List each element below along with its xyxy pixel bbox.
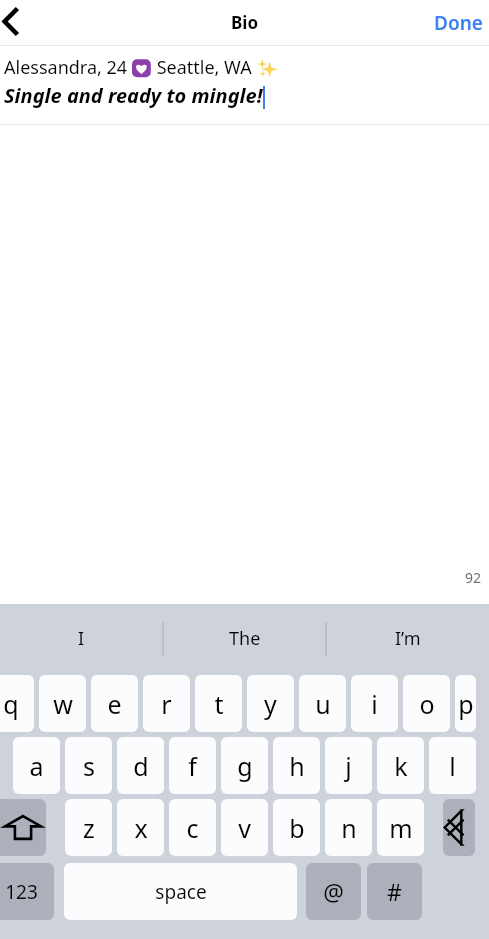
staticText: I’m xyxy=(395,626,421,651)
button[interactable]: Back xyxy=(0,0,34,45)
button[interactable]: # xyxy=(367,863,422,920)
staticText: w xyxy=(53,687,73,721)
button[interactable]: x xyxy=(117,799,164,856)
button[interactable]: u xyxy=(299,675,346,732)
button[interactable]: k xyxy=(377,737,424,794)
staticText: t xyxy=(214,687,224,721)
staticText: v xyxy=(238,811,251,845)
button[interactable]: o xyxy=(403,675,450,732)
staticText: Seattle, WA xyxy=(152,55,257,80)
button[interactable]: I xyxy=(0,604,163,672)
staticText: Done xyxy=(434,10,483,36)
staticText: r xyxy=(161,687,172,721)
staticText: z xyxy=(83,811,95,845)
button[interactable]: b xyxy=(273,799,320,856)
staticText: c xyxy=(186,811,199,845)
button[interactable]: q xyxy=(0,675,34,732)
button[interactable]: Backspace xyxy=(443,799,475,856)
staticText: p xyxy=(458,687,474,721)
staticText: y xyxy=(264,687,277,721)
button[interactable]: v xyxy=(221,799,268,856)
button[interactable]: Alessandra, 24 xyxy=(0,46,489,124)
staticText: # xyxy=(387,876,402,907)
staticText: o xyxy=(419,687,435,721)
button[interactable]: l xyxy=(429,737,476,794)
button[interactable]: w xyxy=(39,675,86,732)
staticText: e xyxy=(107,687,122,721)
staticText: k xyxy=(394,749,408,783)
staticText: The xyxy=(229,626,261,651)
button[interactable]: m xyxy=(377,799,424,856)
button[interactable]: @ xyxy=(306,863,361,920)
staticText: d xyxy=(133,749,149,783)
staticText: space xyxy=(155,879,207,905)
button[interactable]: h xyxy=(273,737,320,794)
staticText: s xyxy=(83,749,95,783)
staticText: b xyxy=(289,811,305,845)
button[interactable]: g xyxy=(221,737,268,794)
button[interactable]: r xyxy=(143,675,190,732)
staticText: u xyxy=(315,687,331,721)
staticText: x xyxy=(134,811,148,845)
button[interactable]: i xyxy=(351,675,398,732)
staticText: m xyxy=(389,811,413,845)
button[interactable]: n xyxy=(325,799,372,856)
staticText: 123 xyxy=(5,879,38,905)
staticText: j xyxy=(345,749,352,783)
staticText: Bio xyxy=(231,11,259,34)
staticText: 92 xyxy=(465,568,482,587)
button[interactable]: f xyxy=(169,737,216,794)
button[interactable]: s xyxy=(65,737,112,794)
button[interactable]: space xyxy=(64,863,297,920)
staticText: h xyxy=(289,749,305,783)
staticText: Alessandra, 24 xyxy=(4,55,132,80)
button[interactable]: c xyxy=(169,799,216,856)
staticText: I xyxy=(78,626,85,651)
button[interactable]: 123 xyxy=(0,863,54,920)
button[interactable]: a xyxy=(13,737,60,794)
button[interactable]: e xyxy=(91,675,138,732)
button[interactable]: t xyxy=(195,675,242,732)
button[interactable]: z xyxy=(65,799,112,856)
staticText: Single and ready to mingle! xyxy=(4,82,263,109)
staticText: i xyxy=(371,687,378,721)
button[interactable]: d xyxy=(117,737,164,794)
staticText: @ xyxy=(323,876,344,907)
staticText: l xyxy=(449,749,456,783)
button[interactable]: p xyxy=(455,675,476,732)
button[interactable]: Done xyxy=(428,0,489,45)
staticText: g xyxy=(237,749,253,783)
button[interactable]: I’m xyxy=(326,604,489,672)
button[interactable]: Shift xyxy=(0,799,46,856)
button[interactable]: The xyxy=(163,604,326,672)
staticText: a xyxy=(29,749,44,783)
staticText: n xyxy=(341,811,357,845)
staticText: f xyxy=(188,749,197,783)
staticText: q xyxy=(3,687,19,721)
button[interactable]: j xyxy=(325,737,372,794)
button[interactable]: y xyxy=(247,675,294,732)
